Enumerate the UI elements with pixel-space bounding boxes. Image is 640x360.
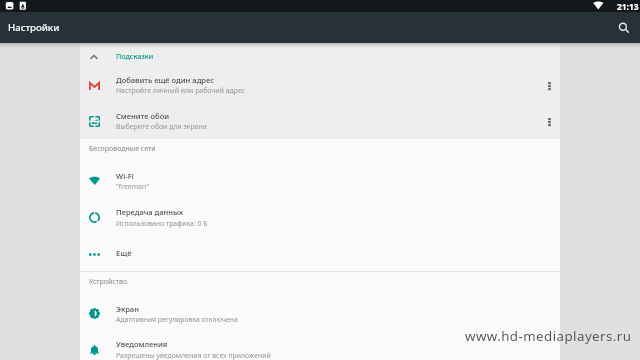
staticText: Добавить ещё один адрес [116,75,215,85]
staticText: Настройте личный или рабочий адрес [116,86,246,95]
staticText: Подсказки [116,51,154,61]
button[interactable] [80,71,530,107]
staticText: Беспроводные сети [89,144,156,154]
staticText: www.hd-mediaplayers.ru [465,327,632,345]
button[interactable] [80,332,560,360]
button[interactable] [80,107,530,143]
button[interactable] [80,296,560,332]
staticText: Экран [116,304,139,314]
staticText: Выберите обои для экрана [116,122,207,131]
button[interactable]: Ещё [541,78,557,94]
staticText: Разрешены уведомления от всех приложений [116,351,271,360]
staticText: Адаптивная регулировка отключена [116,315,238,324]
button[interactable]: Подсказки [80,46,560,68]
staticText: "freeman" [116,182,149,191]
staticText: Передача данных [116,207,184,217]
button[interactable]: Поиск [613,17,635,39]
staticText: Смените обои [116,111,170,121]
button[interactable] [80,242,560,278]
staticText: Устройство [89,277,128,287]
staticText: Уведомления [116,339,168,349]
staticText: Wi-Fi [116,171,134,181]
staticText: 21:13 [617,1,639,12]
staticText: Настройки [8,21,60,34]
staticText: Ещё [116,248,132,258]
button[interactable] [80,164,560,200]
button[interactable]: Ещё [541,114,557,130]
staticText: Использовано трафика: 0 Б [116,219,208,228]
button[interactable] [80,200,560,236]
